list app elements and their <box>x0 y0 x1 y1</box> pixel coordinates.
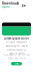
staticText: Lorem ipsum dolor <box>4 37 29 40</box>
staticText: veniam quis nostrud <box>7 57 25 60</box>
staticText: eiusmod tempor ut <box>7 49 26 51</box>
button[interactable]: Get <box>11 62 22 65</box>
staticText: labore et dolore <box>8 52 24 55</box>
staticText: magna aliqua ut enim ad minim <box>2 54 30 56</box>
staticText: Open <box>2 5 10 8</box>
staticText: adipiscing elit sed do <box>5 45 27 47</box>
button[interactable]: Play <box>22 4 26 7</box>
staticText: Download <box>2 1 18 5</box>
staticText: sit amet consectetur <box>6 41 27 44</box>
staticText: Get <box>14 62 18 65</box>
